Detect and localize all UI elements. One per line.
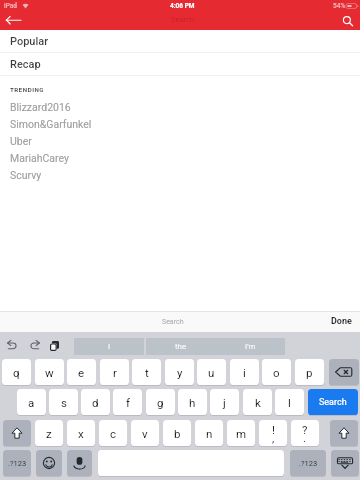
button[interactable]: p bbox=[295, 359, 324, 387]
staticText: Done bbox=[331, 316, 352, 327]
staticText: l bbox=[288, 396, 291, 409]
button[interactable]: Recap bbox=[0, 53, 360, 75]
button[interactable]: s bbox=[49, 389, 78, 417]
button[interactable]: I'm bbox=[216, 338, 285, 355]
button[interactable]: k bbox=[243, 389, 272, 417]
staticText: the bbox=[175, 342, 187, 351]
button[interactable]: h bbox=[178, 389, 207, 417]
staticText: .?123 bbox=[299, 459, 318, 468]
staticText: Blizzard2016 bbox=[10, 101, 71, 113]
staticText: x bbox=[78, 427, 84, 440]
button[interactable]: Done bbox=[331, 316, 352, 327]
button[interactable]: Shift bbox=[3, 420, 31, 448]
button[interactable]: n bbox=[195, 420, 223, 448]
button[interactable]: l bbox=[275, 389, 304, 417]
staticText: m bbox=[236, 427, 247, 440]
button[interactable]: ! bbox=[259, 420, 287, 448]
button[interactable]: w bbox=[35, 359, 64, 387]
staticText: y bbox=[177, 366, 183, 379]
staticText: Search bbox=[171, 15, 195, 24]
button[interactable]: Popular bbox=[0, 30, 360, 52]
button[interactable]: Back bbox=[0, 11, 26, 30]
button[interactable]: f bbox=[113, 389, 142, 417]
button[interactable]: Backspace bbox=[329, 359, 359, 387]
button[interactable]: Uber bbox=[0, 132, 360, 149]
button[interactable]: Search bbox=[308, 389, 358, 417]
staticText: Simon&Garfunkel bbox=[10, 118, 92, 130]
button[interactable]: i bbox=[230, 359, 259, 387]
button[interactable]: g bbox=[146, 389, 175, 417]
staticText: s bbox=[61, 396, 67, 409]
button[interactable]: Shift right bbox=[330, 420, 358, 448]
button[interactable]: Space bbox=[98, 450, 284, 478]
staticText: f bbox=[126, 396, 130, 409]
staticText: Popular bbox=[10, 35, 49, 48]
staticText: Search bbox=[162, 318, 184, 326]
staticText: a bbox=[28, 396, 35, 409]
button[interactable]: Hide keyboard bbox=[331, 450, 359, 478]
staticText: v bbox=[142, 427, 148, 440]
button[interactable]: c bbox=[99, 420, 127, 448]
staticText: .?123 bbox=[8, 459, 27, 468]
staticText: MariahCarey bbox=[10, 152, 69, 164]
staticText: r bbox=[113, 366, 117, 379]
staticText: j bbox=[223, 396, 226, 409]
button[interactable]: .?123 bbox=[3, 450, 31, 478]
button[interactable]: I bbox=[74, 338, 144, 355]
button[interactable]: z bbox=[35, 420, 63, 448]
staticText: I'm bbox=[245, 342, 256, 351]
staticText: Search bbox=[319, 397, 347, 408]
button[interactable]: Redo bbox=[24, 338, 45, 350]
staticText: TRENDING bbox=[10, 86, 45, 93]
staticText: ? bbox=[302, 423, 308, 436]
button[interactable]: e bbox=[67, 359, 96, 387]
staticText: d bbox=[92, 396, 99, 409]
staticText: b bbox=[174, 427, 181, 440]
button[interactable]: j bbox=[210, 389, 239, 417]
staticText: z bbox=[46, 427, 52, 440]
button[interactable]: v bbox=[131, 420, 159, 448]
staticText: Uber bbox=[10, 135, 32, 147]
button[interactable]: t bbox=[132, 359, 161, 387]
button[interactable]: m bbox=[227, 420, 255, 448]
staticText: e bbox=[78, 366, 85, 379]
button[interactable]: u bbox=[197, 359, 226, 387]
button[interactable]: Emoji bbox=[36, 450, 62, 478]
staticText: h bbox=[189, 396, 196, 409]
button[interactable]: o bbox=[262, 359, 291, 387]
button[interactable]: Scurvy bbox=[0, 166, 360, 183]
button[interactable]: q bbox=[2, 359, 31, 387]
button[interactable]: Undo bbox=[2, 338, 23, 350]
staticText: q bbox=[13, 366, 20, 379]
button[interactable]: .?123 bbox=[290, 450, 326, 478]
staticText: p bbox=[306, 366, 313, 379]
button[interactable]: ? bbox=[291, 420, 319, 448]
staticText: t bbox=[145, 366, 149, 379]
button[interactable]: Simon&Garfunkel bbox=[0, 115, 360, 132]
button[interactable]: d bbox=[81, 389, 110, 417]
staticText: o bbox=[273, 366, 280, 379]
staticText: I bbox=[108, 342, 111, 351]
staticText: 54% bbox=[333, 2, 346, 10]
staticText: u bbox=[208, 366, 215, 379]
button[interactable]: Search bbox=[334, 11, 360, 30]
button[interactable]: MariahCarey bbox=[0, 149, 360, 166]
staticText: n bbox=[206, 427, 213, 440]
staticText: w bbox=[45, 366, 54, 379]
staticText: i bbox=[243, 366, 246, 379]
button[interactable]: Blizzard2016 bbox=[0, 98, 360, 115]
button[interactable]: Dictate bbox=[67, 450, 92, 478]
staticText: iPad bbox=[4, 2, 17, 10]
button[interactable]: y bbox=[165, 359, 194, 387]
button[interactable]: x bbox=[67, 420, 95, 448]
staticText: Recap bbox=[10, 58, 41, 71]
button[interactable]: the bbox=[146, 338, 216, 355]
staticText: k bbox=[255, 396, 261, 409]
staticText: c bbox=[110, 427, 117, 440]
button[interactable]: r bbox=[100, 359, 129, 387]
staticText: , bbox=[272, 431, 275, 444]
staticText: ! bbox=[272, 423, 275, 436]
button[interactable]: a bbox=[17, 389, 46, 417]
button[interactable]: Paste bbox=[46, 337, 66, 351]
button[interactable]: b bbox=[163, 420, 191, 448]
